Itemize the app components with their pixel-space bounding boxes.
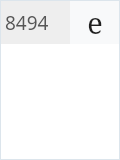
staticText: e xyxy=(87,3,103,42)
button[interactable]: Letter e xyxy=(70,1,119,44)
button[interactable]: 8494 xyxy=(1,1,70,44)
staticText: 8494 xyxy=(5,10,49,36)
